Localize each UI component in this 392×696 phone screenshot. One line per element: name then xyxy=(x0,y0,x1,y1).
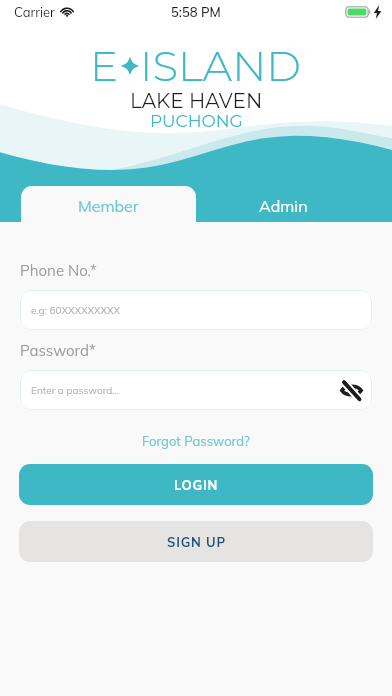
staticText: Password* xyxy=(20,341,96,360)
staticText: Carrier xyxy=(14,4,55,20)
staticText: LAKE HAVEN xyxy=(130,89,263,108)
staticText: E xyxy=(90,40,119,91)
staticText: e.g: 60XXXXXXXXX xyxy=(31,304,121,317)
staticText: Admin xyxy=(259,196,308,216)
button[interactable]: LOGIN xyxy=(19,464,373,505)
staticText: Member xyxy=(78,196,139,216)
staticText: PUCHONG xyxy=(150,111,243,127)
staticText: LOGIN xyxy=(174,477,219,493)
button[interactable]: Enter a password... xyxy=(20,370,372,410)
button[interactable]: SIGN UP xyxy=(19,521,373,562)
staticText: ISLAND xyxy=(140,40,302,91)
staticText: 5:58 PM xyxy=(171,4,221,20)
button[interactable]: e.g: 60XXXXXXXXX xyxy=(20,290,372,330)
staticText: SIGN UP xyxy=(167,534,226,550)
button[interactable]: Admin xyxy=(196,186,392,222)
staticText: Phone No.* xyxy=(20,261,97,280)
button[interactable]: Forgot Password? xyxy=(136,430,256,452)
button[interactable]: Member xyxy=(21,186,196,222)
button[interactable]: Show password xyxy=(338,377,364,403)
staticText: Enter a password... xyxy=(31,384,120,397)
